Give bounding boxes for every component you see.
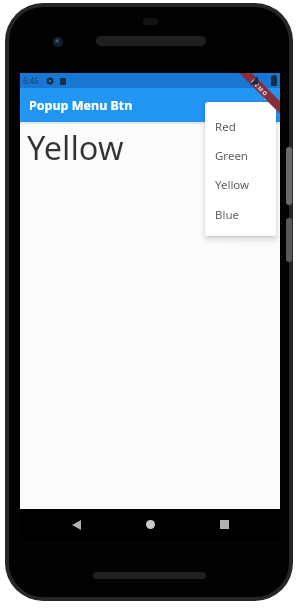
button[interactable]: Blue xyxy=(205,200,276,230)
button[interactable] xyxy=(72,520,81,530)
staticText: Red xyxy=(215,119,236,135)
staticText: Yellow xyxy=(27,125,124,169)
staticText: Popup Menu Btn xyxy=(29,97,133,114)
staticText: DEMO xyxy=(250,77,270,98)
staticText: Yellow xyxy=(215,177,250,193)
staticText: Green xyxy=(215,148,248,164)
button[interactable]: Green xyxy=(205,141,276,170)
staticText: 6:46 xyxy=(23,75,39,86)
staticText: Blue xyxy=(215,207,240,223)
button[interactable]: Red xyxy=(205,112,276,141)
button[interactable]: Yellow xyxy=(205,170,276,200)
button[interactable] xyxy=(264,96,268,114)
button[interactable] xyxy=(146,520,155,529)
